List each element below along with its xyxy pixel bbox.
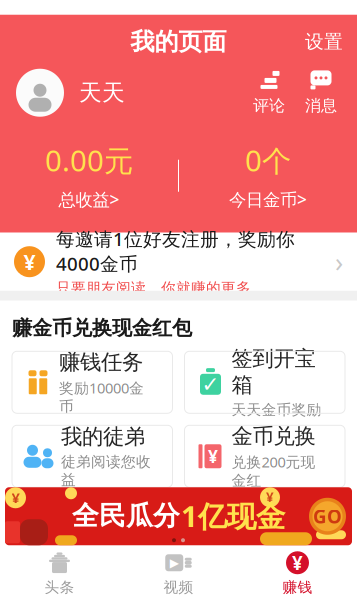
staticText: 天天金币奖励 [231, 401, 321, 419]
button[interactable]: 0个 [179, 139, 357, 213]
button[interactable]: 消息 [295, 70, 357, 116]
button[interactable]: 天天 [0, 67, 125, 119]
staticText: 每邀请1位好友注册，奖励你4000金币 [56, 226, 295, 276]
staticText: 我的页面 [130, 27, 226, 56]
staticText: 赚钱 [282, 578, 312, 596]
staticText: 0.00元 [45, 141, 133, 180]
button[interactable]: 0.00元 [0, 139, 178, 213]
staticText: › [335, 244, 343, 279]
staticText: ¥ [208, 445, 218, 468]
staticText: 奖励10000金币 [59, 378, 144, 416]
staticText: 徒弟阅读您收益 [61, 453, 151, 489]
button[interactable]: ¥ [184, 425, 345, 487]
staticText: ¥ [292, 550, 303, 575]
staticText: 兑换200元现金红 [231, 452, 315, 490]
button[interactable]: ¥ [238, 551, 357, 596]
staticText: 全民瓜分 [72, 499, 180, 532]
staticText: 今日金币> [229, 188, 307, 211]
staticText: ¥ [11, 488, 19, 507]
button[interactable]: 设置 [291, 22, 357, 61]
staticText: 金币兑换 [231, 423, 315, 449]
staticText: 视频 [163, 578, 193, 596]
staticText: ✓ [201, 372, 219, 396]
button[interactable]: ¥ [0, 233, 357, 291]
staticText: 只要朋友阅读，你就赚的更多 [56, 279, 251, 297]
staticText: 赚钱任务 [59, 349, 143, 375]
button[interactable]: 头条 [0, 551, 119, 596]
staticText: 1亿现金 [181, 496, 285, 535]
button[interactable]: 赚钱任务 [12, 351, 172, 413]
button[interactable]: 我的徒弟 [12, 425, 172, 487]
button[interactable]: ✓ [184, 351, 345, 413]
staticText: ¥ [266, 488, 274, 506]
staticText: GO [313, 504, 342, 529]
staticText: 我的徒弟 [61, 424, 145, 450]
button[interactable]: 评论 [243, 70, 295, 116]
staticText: 签到开宝箱 [231, 346, 315, 398]
staticText: 赚金币兑换现金红包 [12, 316, 192, 340]
staticText: 天天 [79, 79, 125, 107]
staticText: 消息 [305, 96, 337, 116]
staticText: 设置 [305, 30, 343, 53]
staticText: 总收益> [58, 188, 119, 211]
staticText: ¥ [23, 247, 35, 276]
staticText: 评论 [253, 96, 285, 116]
staticText: ▶ [170, 556, 179, 570]
button[interactable]: ▶ [119, 551, 238, 596]
button[interactable]: ¥ [5, 487, 352, 545]
staticText: 0个 [245, 141, 291, 180]
staticText: 头条 [44, 578, 74, 596]
